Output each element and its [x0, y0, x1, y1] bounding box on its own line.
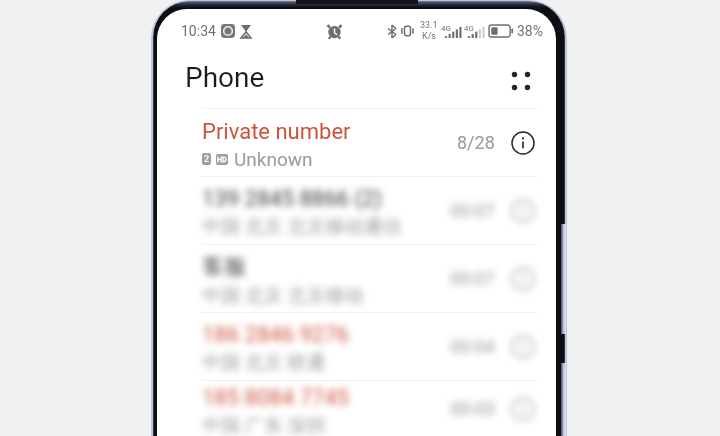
staticText: 中国 北京 联通: [202, 351, 326, 375]
staticText: HD: [217, 156, 227, 164]
staticText: 00:04: [450, 336, 495, 357]
staticText: 10:34: [181, 23, 216, 39]
staticText: 00:03: [450, 398, 495, 419]
staticText: K/s: [422, 31, 437, 42]
button[interactable]: More options: [504, 64, 538, 98]
staticText: 139 2845 8866 (2): [202, 186, 382, 212]
button[interactable]: 185 8084 7745: [157, 381, 556, 436]
staticText: 客服: [202, 253, 246, 281]
staticText: 4G: [441, 24, 451, 33]
staticText: 33.1: [420, 20, 438, 31]
staticText: Unknown: [234, 148, 313, 170]
staticText: 2: [204, 154, 210, 165]
button[interactable]: 139 2845 8866 (2): [157, 177, 556, 244]
staticText: 186 2846 9276: [202, 322, 349, 348]
staticText: Private number: [202, 119, 351, 145]
staticText: 185 8084 7745: [202, 385, 349, 411]
staticText: 8/28: [457, 132, 495, 153]
button[interactable]: 客服: [157, 245, 556, 312]
staticText: 00:07: [450, 268, 495, 289]
staticText: 4G: [464, 24, 474, 33]
button[interactable]: Call details: [511, 131, 535, 155]
staticText: 00:07: [450, 200, 495, 221]
button[interactable]: 186 2846 9276: [157, 313, 556, 380]
staticText: 38%: [517, 23, 543, 39]
staticText: Phone: [185, 61, 265, 94]
button[interactable]: Private number: [157, 109, 556, 176]
staticText: 中国 北京 北京移动通信: [202, 215, 402, 239]
staticText: 中国 广东 深圳: [202, 414, 326, 436]
staticText: 中国 北京 北京移动: [202, 284, 364, 308]
